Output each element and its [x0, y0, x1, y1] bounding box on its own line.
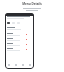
staticText: Menu Details	[22, 2, 42, 6]
